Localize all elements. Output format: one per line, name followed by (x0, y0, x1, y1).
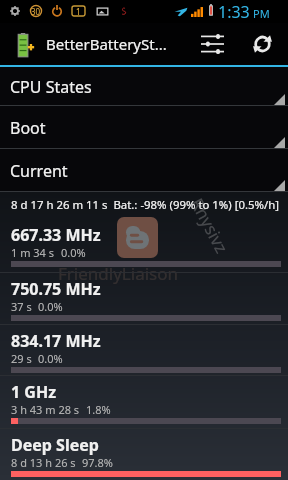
staticText: 8 d 13 h 26 s (11, 455, 76, 470)
button[interactable]: 834.17 MHz (0, 324, 288, 375)
staticText: 750.75 MHz (11, 278, 101, 300)
button[interactable]: Deep Sleep (0, 428, 288, 480)
staticText: 3 h 43 m 28 s (11, 402, 80, 417)
button[interactable]: 667.33 MHz (0, 218, 288, 272)
staticText: 0.0% (61, 245, 86, 260)
button[interactable]: 1 GHz (0, 375, 288, 428)
staticText: 30 (31, 6, 41, 17)
staticText: CPU States (10, 76, 92, 98)
staticText: 0.0% (38, 351, 63, 366)
staticText: BetterBatterySt... (46, 34, 183, 54)
staticText: 0.0% (38, 299, 63, 314)
staticText: Boot (10, 117, 46, 139)
staticText: 8 d 17 h 26 m 11 s Bat.: -98% (99% to 1%… (11, 197, 280, 213)
staticText: 667.33 MHz (11, 224, 101, 246)
staticText: 1 GHz (11, 381, 57, 403)
staticText: 29 s (11, 351, 32, 366)
staticText: 37 s (11, 299, 32, 314)
staticText: FriendlyLiaison (58, 262, 178, 285)
button[interactable]: CPU States (0, 67, 288, 106)
staticText: 834.17 MHz (11, 330, 101, 352)
staticText: 1.8% (86, 402, 111, 417)
staticText: 1:33 (218, 1, 250, 23)
staticText: PM (253, 6, 270, 21)
button[interactable]: Current (0, 149, 288, 192)
staticText: 97.8% (82, 455, 113, 470)
staticText: Rhysivz (185, 194, 233, 257)
staticText: 1 (76, 6, 81, 16)
staticText: Current (10, 160, 68, 182)
staticText: Deep Sleep (11, 434, 99, 456)
button[interactable]: Refresh (242, 23, 283, 65)
button[interactable]: 750.75 MHz (0, 272, 288, 324)
staticText: 1 m 34 s (11, 245, 55, 260)
button[interactable]: Filter settings (183, 23, 242, 65)
button[interactable]: Boot (0, 106, 288, 149)
